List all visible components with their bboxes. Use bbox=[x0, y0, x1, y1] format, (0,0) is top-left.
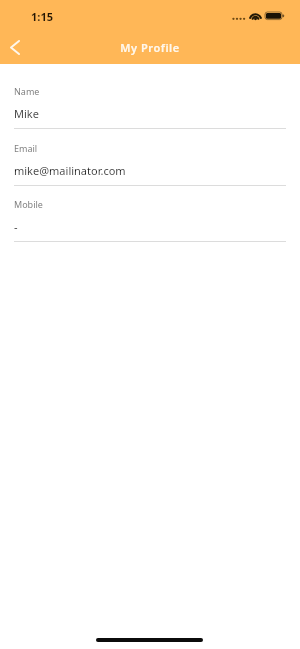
staticText: Mobile bbox=[14, 198, 43, 210]
button[interactable]: Email bbox=[0, 142, 300, 192]
staticText: Name bbox=[14, 85, 40, 97]
button[interactable]: Mobile bbox=[0, 198, 300, 248]
staticText: - bbox=[14, 219, 18, 234]
staticText: mike@mailinator.com bbox=[14, 163, 126, 178]
button[interactable]: Back bbox=[0, 30, 32, 64]
staticText: 1:15 bbox=[31, 9, 53, 24]
staticText: My Profile bbox=[0, 40, 300, 55]
staticText: Mike bbox=[14, 106, 39, 121]
button[interactable]: Name bbox=[0, 85, 300, 135]
staticText: Email bbox=[14, 142, 38, 154]
